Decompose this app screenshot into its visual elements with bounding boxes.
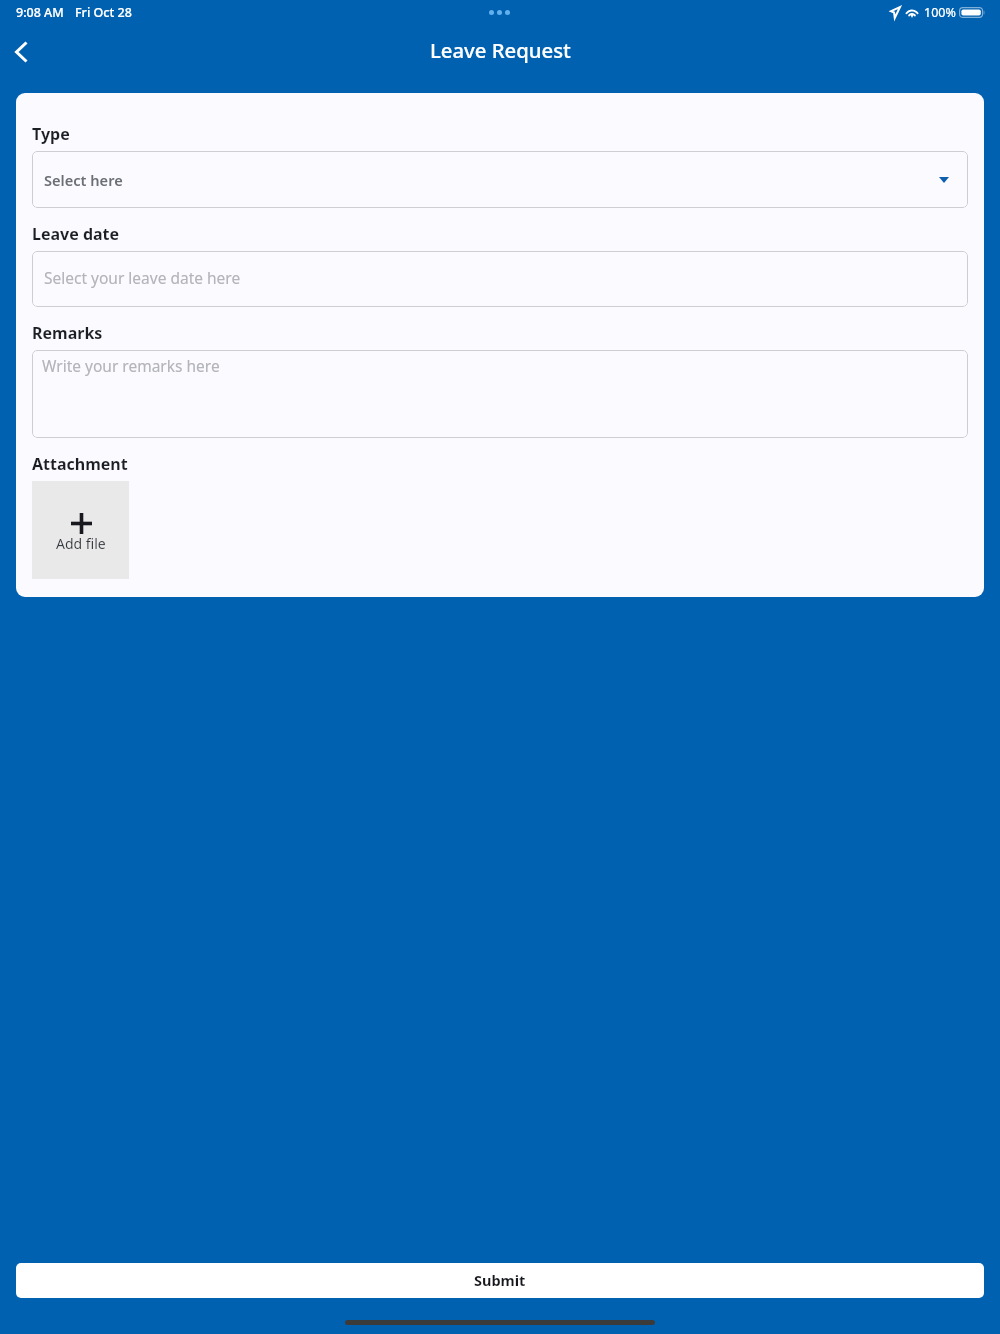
button[interactable]: Back <box>0 30 43 73</box>
staticText: Select your leave date here <box>44 267 241 288</box>
staticText: Leave date <box>32 223 120 245</box>
button[interactable]: Write your remarks here <box>32 350 968 438</box>
staticText: Type <box>32 123 70 145</box>
staticText: Leave Request <box>430 36 571 64</box>
button[interactable]: Select your leave date here <box>32 251 968 307</box>
button[interactable]: Add file <box>32 481 129 579</box>
button[interactable]: Select here <box>32 151 968 208</box>
staticText: Remarks <box>32 322 103 344</box>
staticText: 9:08 AM <box>16 4 64 21</box>
staticText: Write your remarks here <box>42 355 220 376</box>
staticText: 100% <box>924 4 956 21</box>
staticText: Select here <box>44 170 123 190</box>
staticText: Fri Oct 28 <box>75 4 132 21</box>
staticText: Submit <box>474 1270 526 1290</box>
staticText: Add file <box>56 534 106 553</box>
button[interactable]: Submit <box>16 1263 984 1298</box>
staticText: Attachment <box>32 453 128 475</box>
